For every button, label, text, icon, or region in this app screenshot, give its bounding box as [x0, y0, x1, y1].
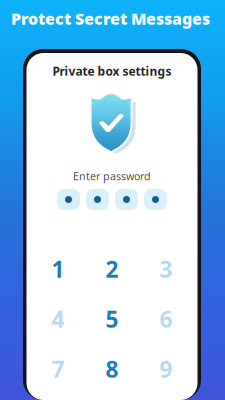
button[interactable]: 9 — [139, 344, 193, 394]
button[interactable]: 3 — [139, 244, 193, 294]
button[interactable]: 7 — [31, 344, 85, 394]
staticText: 5 — [105, 304, 118, 334]
button[interactable]: 5 — [85, 294, 139, 344]
staticText: Private box settings — [52, 63, 171, 79]
staticText: 1 — [51, 254, 64, 284]
staticText: 4 — [51, 304, 64, 334]
staticText: 8 — [105, 354, 118, 384]
button[interactable]: 4 — [31, 294, 85, 344]
staticText: 3 — [159, 254, 172, 284]
button[interactable]: 2 — [85, 244, 139, 294]
button[interactable]: 8 — [85, 344, 139, 394]
button[interactable]: 1 — [31, 244, 85, 294]
staticText: 7 — [51, 354, 64, 384]
staticText: Enter password — [73, 169, 151, 183]
staticText: 6 — [159, 304, 172, 334]
button[interactable]: 6 — [139, 294, 193, 344]
staticText: Protect Secret Messages — [11, 8, 210, 29]
staticText: 2 — [105, 254, 118, 284]
staticText: 9 — [159, 354, 172, 384]
